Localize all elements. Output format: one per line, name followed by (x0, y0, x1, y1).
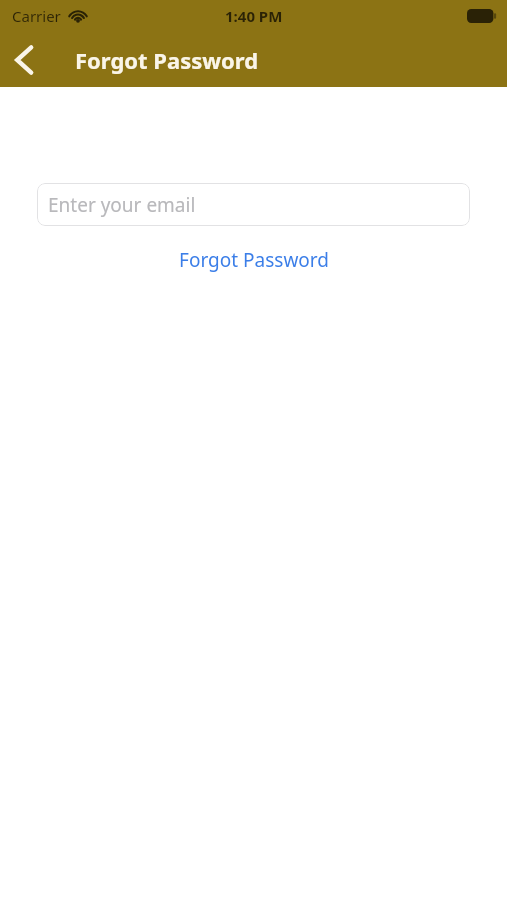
staticText: 1:40 PM (225, 6, 283, 26)
staticText: Forgot Password (75, 45, 259, 75)
staticText: Forgot Password (179, 247, 329, 273)
staticText: Enter your email (48, 192, 196, 218)
button[interactable]: Enter your email (37, 183, 470, 226)
button[interactable]: Back (0, 36, 48, 84)
staticText: Carrier (12, 6, 61, 26)
button[interactable]: Forgot Password (0, 245, 507, 275)
